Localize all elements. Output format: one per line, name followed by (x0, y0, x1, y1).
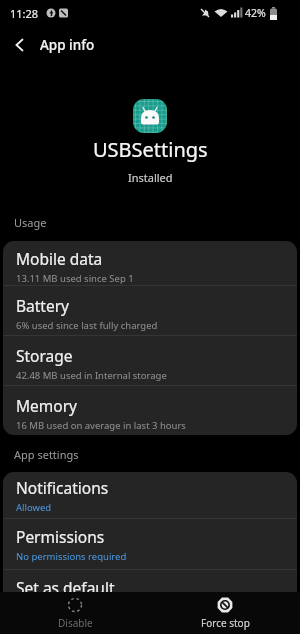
button[interactable] (0, 26, 40, 64)
staticText: No permissions required (16, 550, 127, 563)
button[interactable]: Disable (0, 592, 150, 634)
staticText: Disable (58, 616, 93, 630)
staticText: 11:28 (10, 6, 39, 21)
button[interactable]: Force stop (150, 592, 300, 634)
staticText: Permissions (16, 526, 105, 547)
staticText: Set as default (16, 577, 115, 598)
staticText: 16 MB used on average in last 3 hours (16, 419, 186, 432)
button[interactable]: Set as default (3, 570, 297, 620)
staticText: Mobile data (16, 248, 103, 269)
staticText: Installed (128, 170, 173, 185)
staticText: Battery (16, 295, 70, 316)
staticText: Storage (16, 345, 73, 366)
staticText: App info (40, 36, 95, 54)
staticText: 42.48 MB used in Internal storage (16, 369, 167, 382)
button[interactable] (133, 99, 167, 133)
staticText: 13.11 MB used since Sep 1 (16, 272, 134, 285)
staticText: USBSettings (93, 136, 208, 163)
button[interactable]: Permissions (3, 519, 297, 569)
button[interactable]: Mobile data (3, 241, 297, 285)
staticText: Notifications (16, 477, 109, 498)
staticText: Allowed (16, 501, 52, 514)
button[interactable]: Storage (3, 336, 297, 385)
staticText: 42% (245, 6, 266, 20)
staticText: Force stop (201, 616, 250, 630)
button[interactable]: Notifications (3, 472, 297, 518)
button[interactable]: Battery (3, 286, 297, 335)
button[interactable]: Memory (3, 386, 297, 435)
staticText: Usage (14, 215, 47, 230)
staticText: Memory (16, 395, 77, 416)
staticText: 6% used since last fully charged (16, 319, 158, 332)
staticText: App settings (14, 447, 79, 462)
